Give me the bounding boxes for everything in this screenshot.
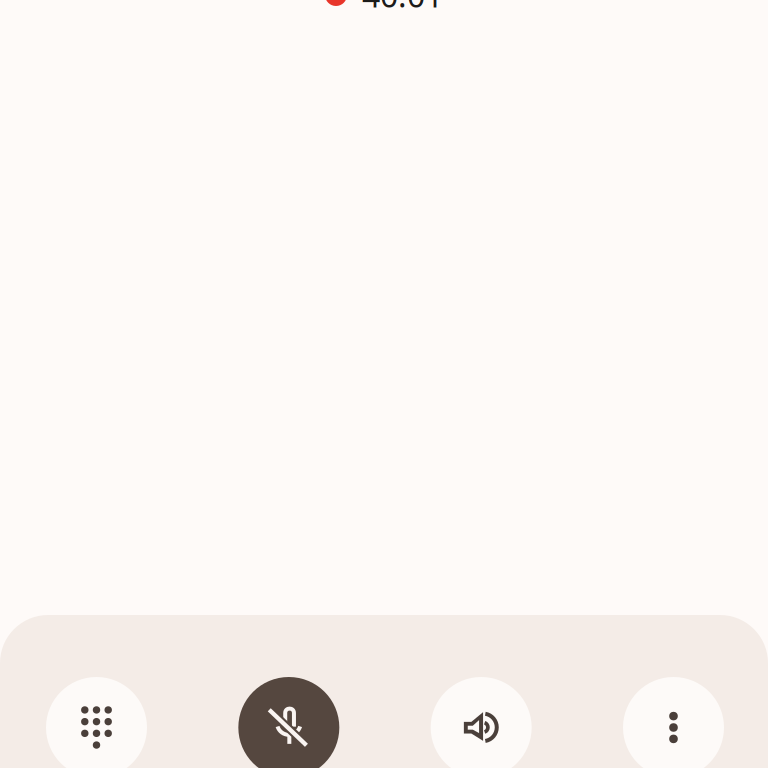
button[interactable]: More options bbox=[623, 677, 724, 768]
button[interactable]: Speaker bbox=[431, 677, 532, 768]
button[interactable]: Unmute bbox=[238, 677, 339, 768]
staticText: 40:01 bbox=[362, 0, 443, 16]
button[interactable]: Keypad bbox=[46, 677, 147, 768]
